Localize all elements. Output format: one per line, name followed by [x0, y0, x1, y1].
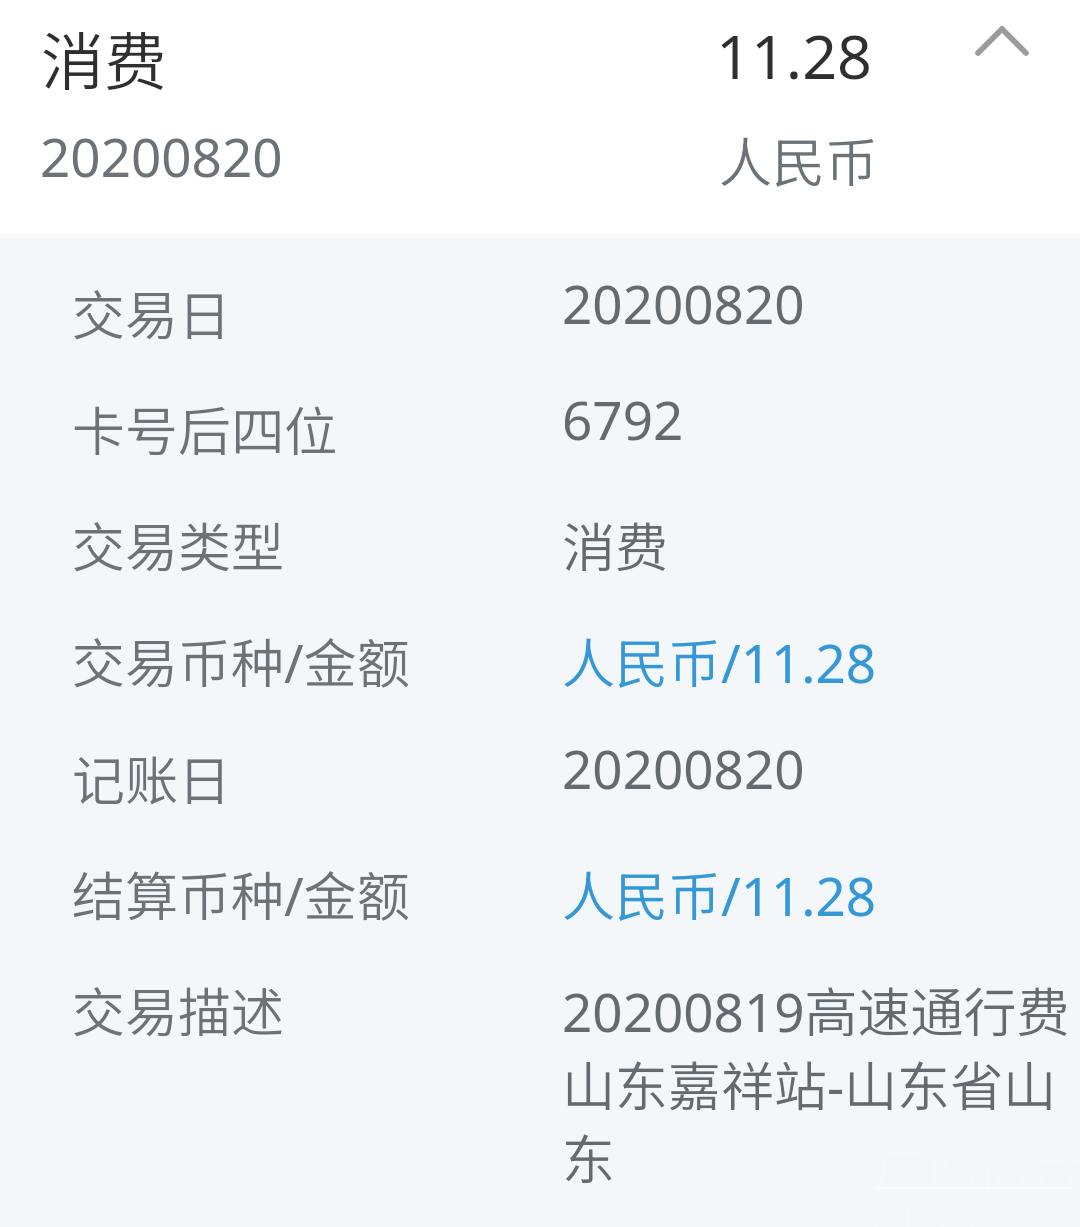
staticText: 消费	[562, 506, 668, 583]
staticText: 20200819高速通行费山东嘉祥站-山东省山东	[562, 971, 1077, 1194]
staticText: 20200820	[40, 120, 283, 192]
staticText: 6792	[562, 383, 684, 455]
button[interactable]: 消费	[0, 0, 1080, 234]
staticText: 交易日	[72, 274, 231, 351]
button[interactable]: 交易币种/金额	[0, 589, 1080, 705]
button[interactable]: 记账日	[0, 706, 1080, 822]
staticText: 人民币/11.28	[562, 855, 877, 932]
staticText: 卡号后四位	[72, 390, 337, 467]
staticText: 11.28	[716, 14, 872, 97]
staticText: 交易描述	[72, 971, 284, 1048]
staticText: 交易类型	[72, 506, 284, 583]
button[interactable]: 交易日	[0, 241, 1080, 357]
staticText: 结算币种/金额	[72, 855, 410, 932]
button[interactable]: 交易描述	[0, 938, 1080, 1198]
staticText: 20200820	[562, 267, 805, 339]
staticText: 消费	[41, 12, 167, 103]
button[interactable]: 结算币种/金额	[0, 822, 1080, 938]
staticText: 人民币	[719, 121, 878, 198]
staticText: 交易币种/金额	[72, 622, 410, 699]
staticText: 20200820	[562, 732, 805, 804]
button[interactable]: 交易类型	[0, 473, 1080, 589]
staticText: 人民币/11.28	[562, 622, 877, 699]
button[interactable]: Collapse details	[957, 0, 1047, 82]
staticText: 记账日	[72, 739, 231, 816]
button[interactable]: 卡号后四位	[0, 357, 1080, 473]
